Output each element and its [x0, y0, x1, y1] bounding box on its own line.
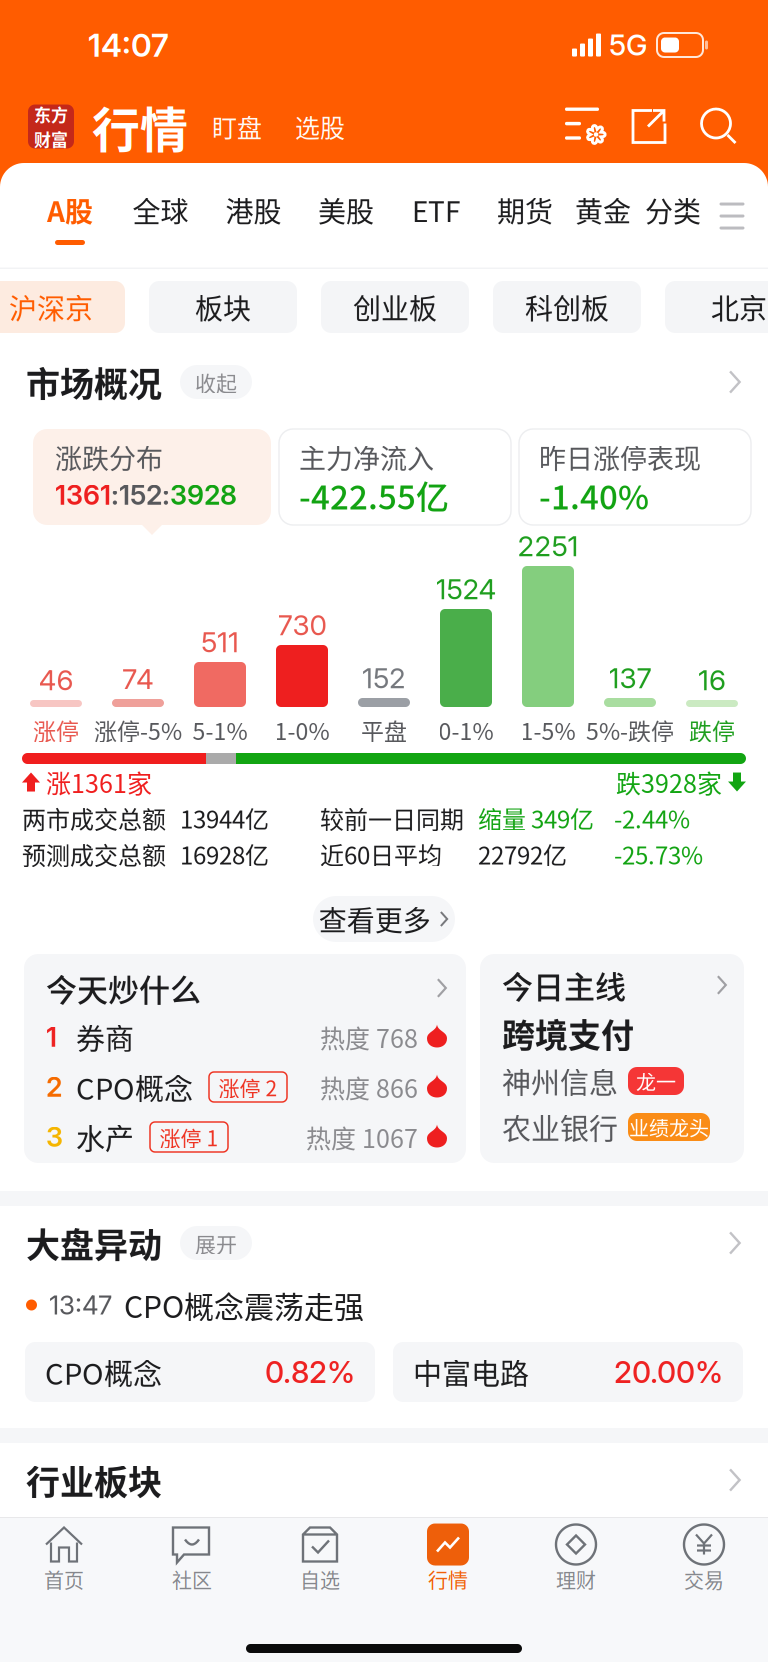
staticText: 期货 — [497, 190, 553, 230]
staticText: 交易 — [684, 1565, 724, 1594]
staticText: 港股 — [225, 190, 281, 230]
staticText: 东方 — [34, 102, 68, 126]
staticText: 3 — [46, 1121, 63, 1153]
staticText: 热度 1067 — [306, 1119, 418, 1155]
staticText: 22792亿 — [478, 837, 567, 871]
staticText: 全球 — [132, 190, 188, 230]
staticText: 跌停 — [689, 713, 735, 747]
staticText: 5G — [609, 27, 647, 63]
staticText: 美股 — [318, 190, 374, 230]
staticText: 两市成交总额 — [22, 801, 166, 835]
button[interactable]: 今日主线 — [480, 954, 744, 1163]
staticText: 涨停 2 — [218, 1072, 277, 1102]
button[interactable]: 沪深京 — [0, 281, 125, 333]
staticText: 13:47 — [49, 1289, 112, 1321]
button[interactable]: 北京 — [665, 281, 768, 333]
staticText: 511 — [201, 625, 239, 659]
button[interactable]: 全部分类 — [710, 163, 754, 269]
staticText: 北京 — [711, 287, 767, 327]
button[interactable]: CPO概念 — [25, 1342, 375, 1402]
button[interactable]: 全球 — [114, 140, 207, 292]
staticText: 查看更多 — [319, 899, 431, 939]
staticText: 农业银行 — [502, 1106, 618, 1148]
staticText: 热度 768 — [320, 1019, 418, 1055]
button[interactable]: 黄金 — [570, 140, 636, 292]
staticText: 0-1% — [438, 713, 493, 747]
staticText: 137 — [608, 661, 651, 695]
staticText: 16 — [698, 663, 726, 697]
staticText: 自选 — [300, 1565, 340, 1594]
staticText: 13944亿 — [180, 801, 269, 835]
button[interactable]: 期货 — [480, 140, 570, 292]
button[interactable]: 中富电路 — [393, 1342, 743, 1402]
staticText: : — [162, 479, 170, 511]
staticText: 昨日涨停表现 — [539, 437, 701, 477]
button[interactable]: 今天炒什么 — [24, 954, 466, 1163]
staticText: 152 — [362, 661, 406, 695]
staticText: 46 — [38, 663, 73, 697]
staticText: 券商 — [76, 1016, 134, 1058]
button[interactable]: 自选 — [256, 1523, 384, 1618]
staticText: 预测成交总额 — [22, 837, 166, 871]
staticText: 1524 — [435, 572, 496, 606]
button[interactable]: 自选设置 — [564, 107, 608, 145]
staticText: 74 — [122, 662, 154, 696]
staticText: 5%-跌停 — [586, 713, 674, 747]
button[interactable]: A股 — [26, 140, 114, 292]
staticText: 黄金 — [575, 190, 631, 230]
staticText: -25.73% — [614, 837, 703, 871]
button[interactable]: 行业板块 — [0, 1443, 768, 1517]
staticText: ETF — [412, 190, 460, 230]
staticText: 沪深京 — [9, 287, 93, 327]
staticText: 大盘异动 — [26, 1218, 162, 1268]
staticText: 1-0% — [274, 713, 329, 747]
staticText: -1.40% — [539, 471, 649, 519]
staticText: 首页 — [44, 1565, 84, 1594]
staticText: 3928 — [170, 479, 237, 511]
staticText: 财富 — [34, 126, 68, 151]
button[interactable]: 大盘异动 — [0, 1206, 768, 1280]
staticText: 今天炒什么 — [46, 966, 201, 1010]
staticText: 业绩龙头 — [629, 1112, 709, 1141]
staticText: 板块 — [195, 287, 251, 327]
button[interactable]: 科创板 — [493, 281, 641, 333]
button[interactable]: ETF — [392, 140, 480, 292]
staticText: 较前一日同期 — [320, 801, 464, 835]
button[interactable]: 市场概况 — [0, 345, 768, 419]
staticText: 收起 — [195, 367, 237, 397]
staticText: 0.82% — [265, 1354, 355, 1390]
staticText: -422.55亿 — [299, 471, 449, 519]
staticText: 盯盘 — [212, 108, 262, 145]
button[interactable]: 理财 — [512, 1523, 640, 1618]
staticText: 152 — [119, 479, 162, 511]
button[interactable]: 社区 — [128, 1523, 256, 1618]
button[interactable]: 创业板 — [321, 281, 469, 333]
staticText: 创业板 — [353, 287, 437, 327]
button[interactable]: 板块 — [149, 281, 297, 333]
staticText: CPO概念震荡走强 — [124, 1283, 364, 1327]
button[interactable]: 美股 — [300, 140, 392, 292]
staticText: 今日主线 — [502, 963, 626, 1007]
staticText: 跌3928家 — [616, 764, 722, 800]
button[interactable]: 分类 — [636, 140, 710, 292]
button[interactable]: 交易 — [640, 1523, 768, 1618]
staticText: 5-1% — [192, 713, 247, 747]
staticText: 社区 — [172, 1565, 212, 1594]
button[interactable]: 搜索 — [668, 107, 738, 145]
staticText: 20.00% — [614, 1354, 723, 1390]
staticText: 1-5% — [520, 713, 575, 747]
staticText: 展开 — [195, 1228, 237, 1258]
button[interactable]: 港股 — [207, 140, 300, 292]
staticText: 涨停 — [33, 713, 79, 747]
staticText: 选股 — [295, 108, 345, 145]
button[interactable]: 行情 — [384, 1523, 512, 1618]
button[interactable]: 查看更多 — [313, 896, 455, 942]
button[interactable]: 首页 — [0, 1523, 128, 1618]
staticText: 1361 — [55, 479, 111, 511]
staticText: 14:07 — [88, 26, 169, 64]
staticText: 近60日平均 — [320, 837, 442, 871]
staticText: 分类 — [645, 190, 701, 230]
staticText: 主力净流入 — [299, 437, 434, 477]
staticText: CPO概念 — [76, 1066, 193, 1108]
button[interactable]: 分享 — [608, 107, 668, 145]
